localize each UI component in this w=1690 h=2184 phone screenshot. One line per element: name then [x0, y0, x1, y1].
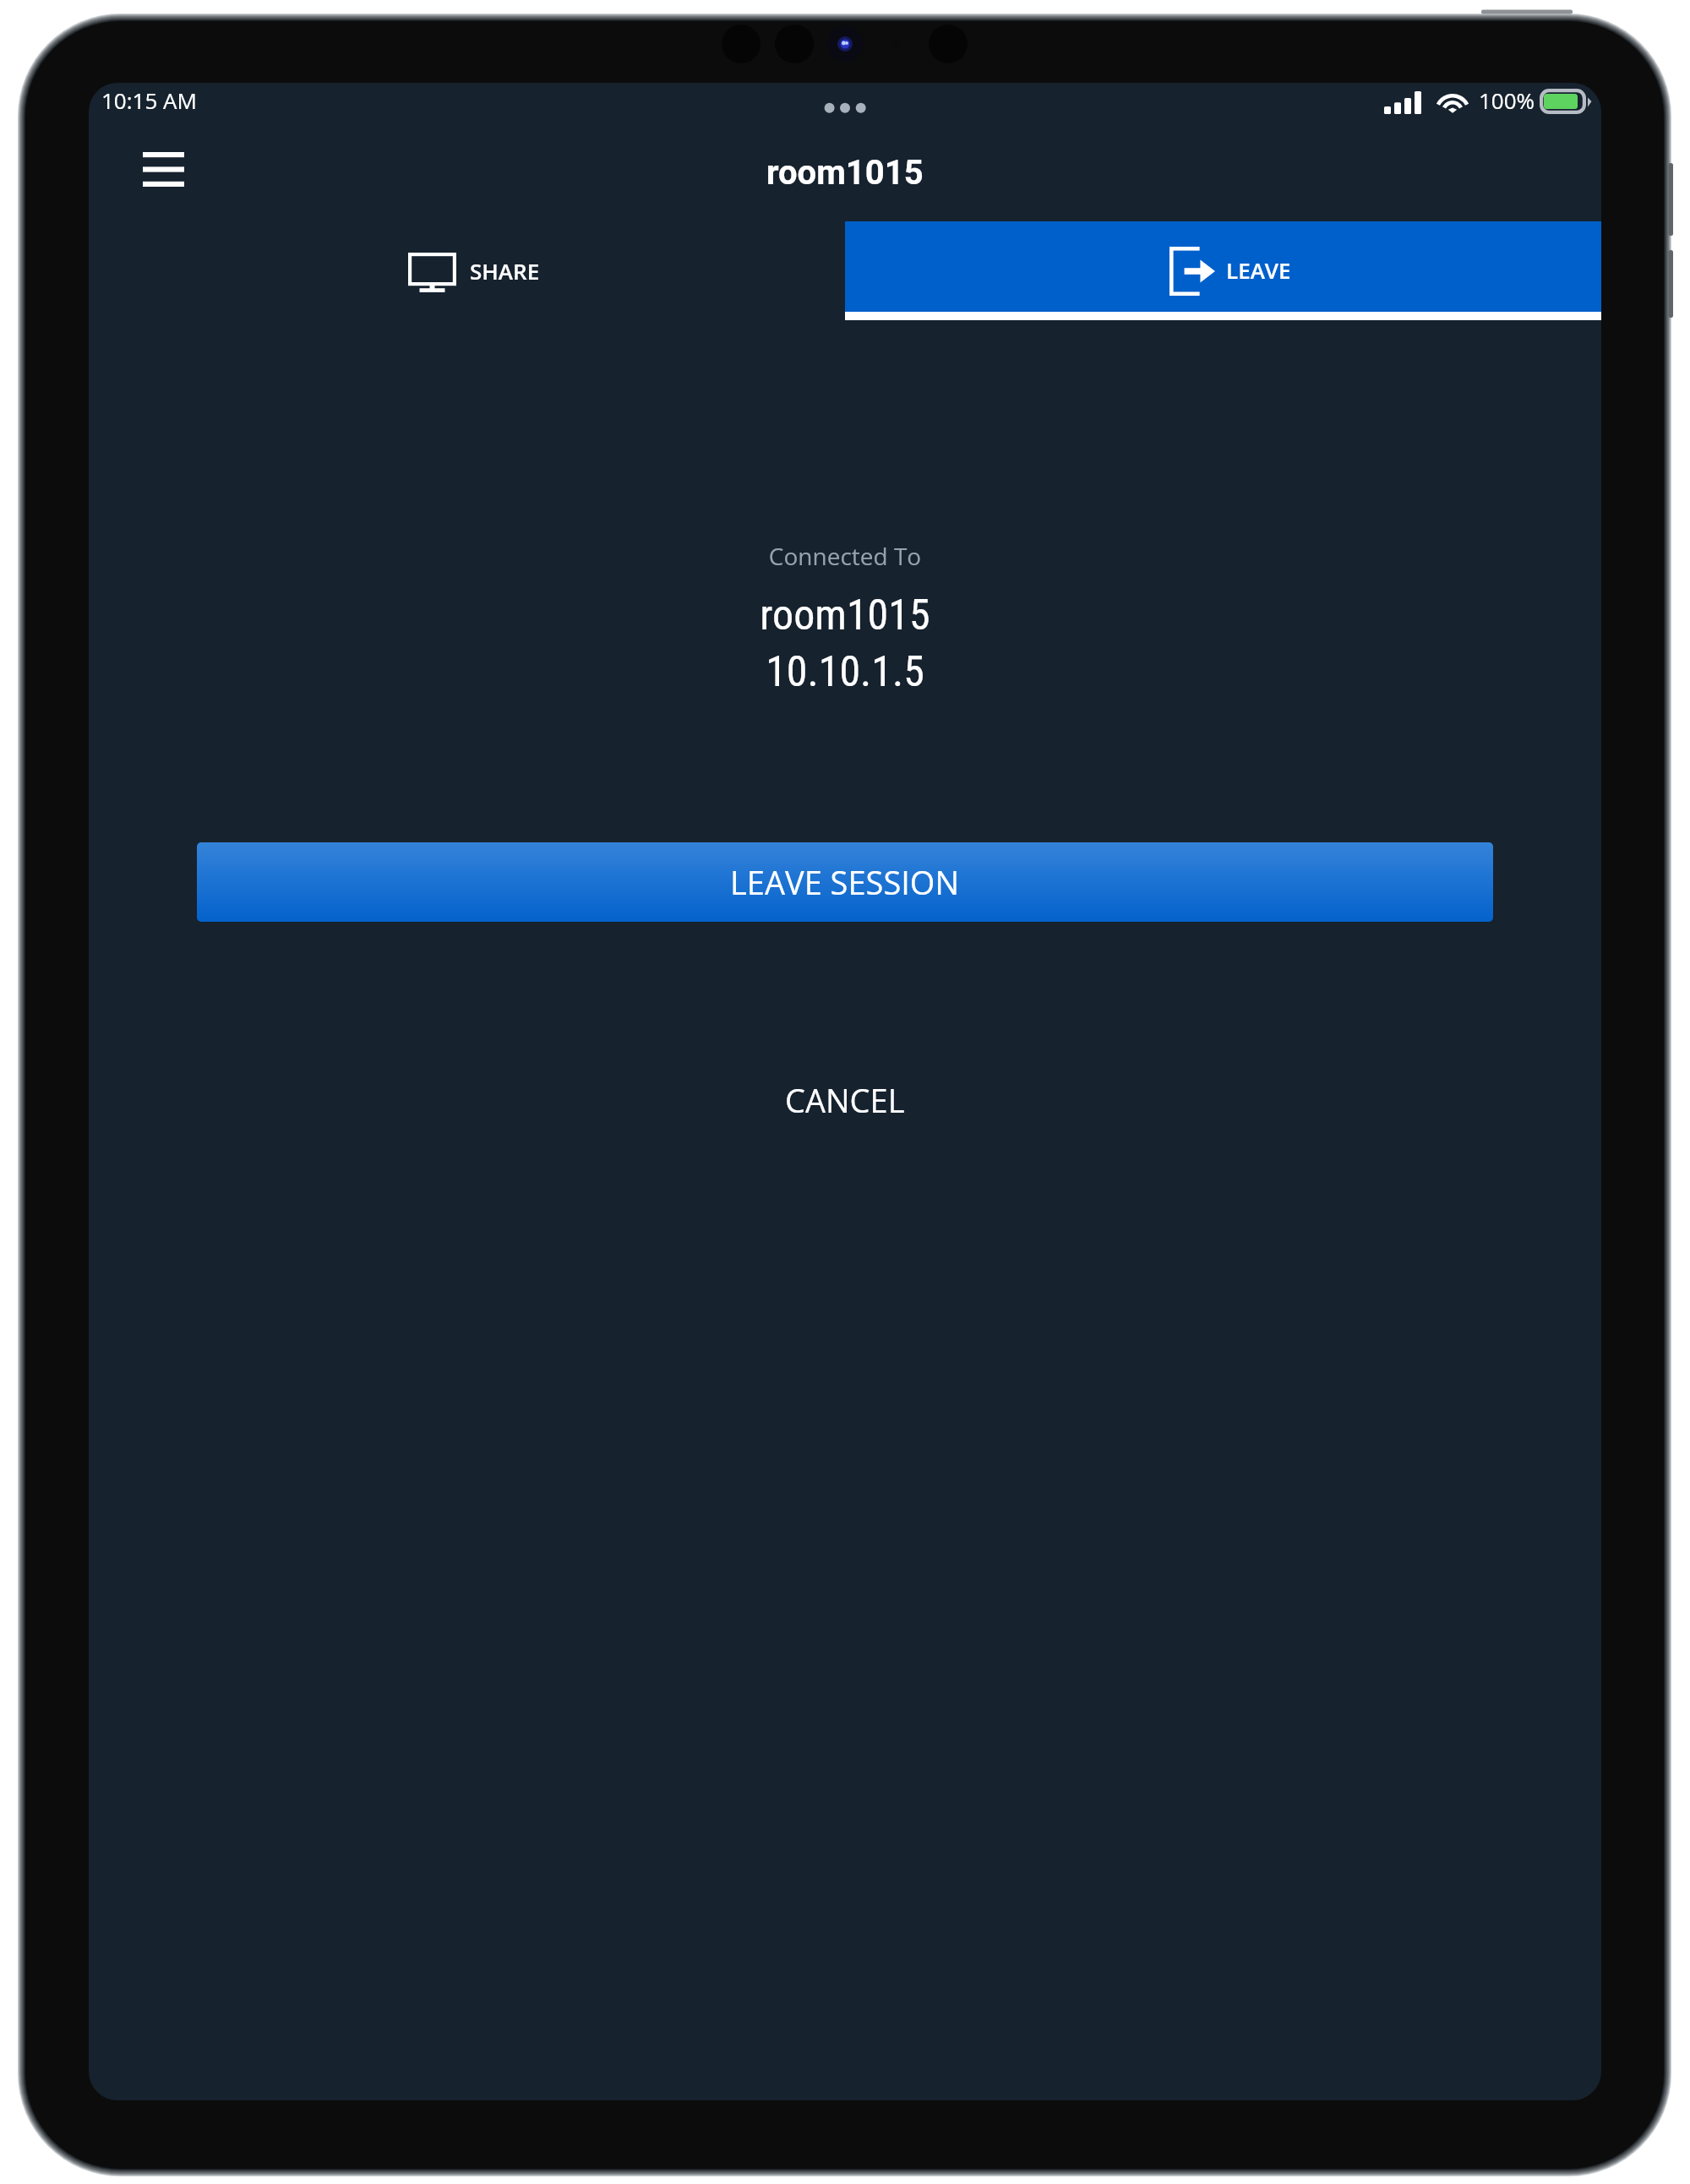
button[interactable]: LEAVE SESSION [197, 842, 1493, 922]
staticText: LEAVE [1226, 255, 1291, 285]
button[interactable]: SHARE [89, 221, 845, 320]
staticText: 10:15 AM [101, 85, 197, 115]
staticText: 100% [1479, 85, 1535, 115]
button[interactable]: CANCEL [89, 1059, 1601, 1141]
staticText: SHARE [470, 256, 540, 286]
button[interactable]: Open navigation menu [123, 129, 204, 210]
staticText: CANCEL [785, 1078, 905, 1122]
staticText: room1015 [89, 591, 1601, 640]
staticText: 10.10.1.5 [89, 647, 1601, 697]
staticText: Connected To [89, 540, 1601, 572]
staticText: LEAVE SESSION [730, 860, 960, 904]
staticText: room1015 [766, 153, 924, 193]
button[interactable]: LEAVE [845, 221, 1601, 320]
